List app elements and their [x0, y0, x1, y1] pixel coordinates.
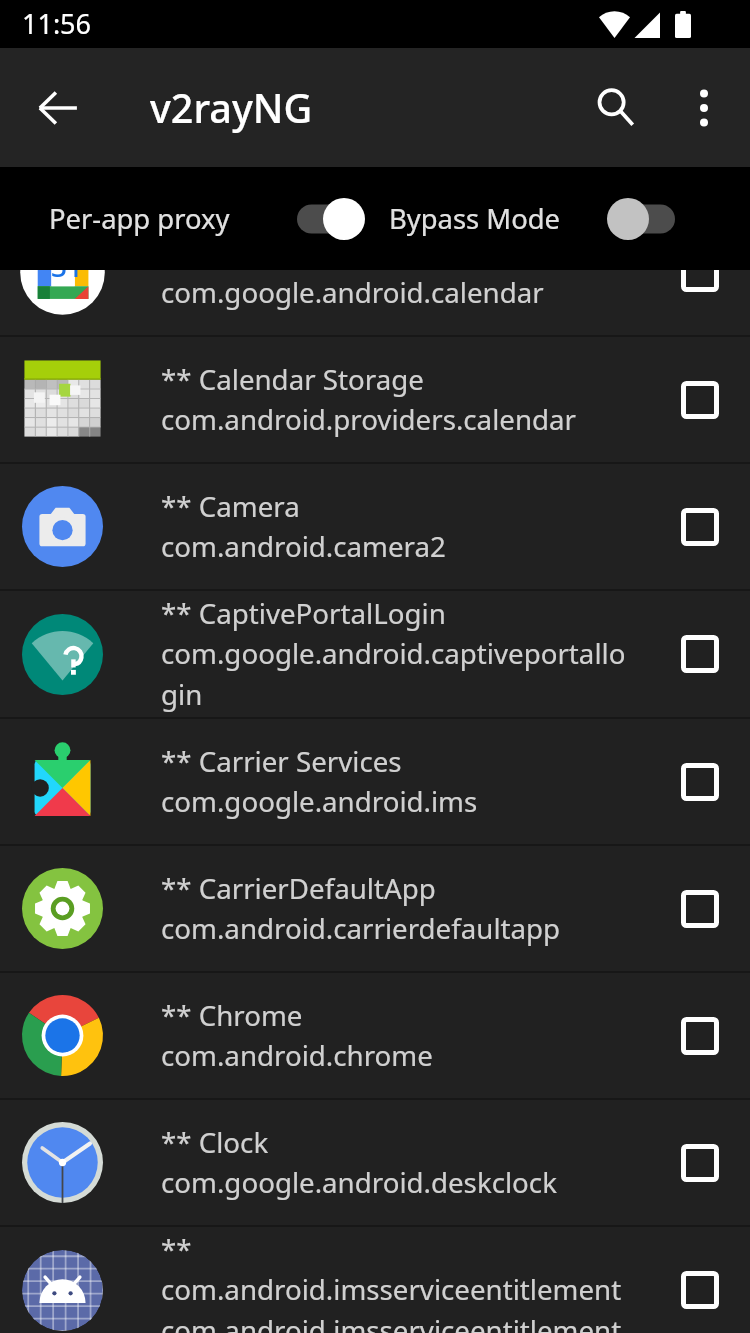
button[interactable]: Select ** CaptivePortalLogin — [660, 591, 740, 717]
button[interactable]: ** Clock com.google.android.deskclock — [0, 1100, 750, 1225]
staticText: v2rayNG — [150, 81, 313, 135]
staticText: 11:56 — [22, 5, 92, 42]
button[interactable]: Select ** CarrierDefaultApp — [660, 846, 740, 971]
button[interactable]: ** Camera com.android.camera2 — [0, 464, 750, 589]
staticText: ** CaptivePortalLogin com.google.android… — [161, 594, 626, 713]
button[interactable]: Select ** Carrier Services — [660, 719, 740, 844]
button[interactable]: ** Calendar Storage com.android.provider… — [0, 337, 750, 462]
button[interactable]: Select ** Calendar — [660, 270, 740, 335]
staticText: ** CarrierDefaultApp com.android.carrier… — [161, 869, 561, 947]
button[interactable]: Select ** Calendar Storage — [660, 337, 740, 462]
button[interactable]: Select ** Clock — [660, 1100, 740, 1225]
staticText: ** Calendar com.google.android.calendar — [161, 270, 544, 311]
staticText: Bypass Mode — [389, 200, 561, 237]
staticText: ** Camera com.android.camera2 — [161, 487, 446, 565]
button[interactable]: ** Carrier Services com.google.android.i… — [0, 719, 750, 844]
button[interactable]: Select ** Chrome — [660, 973, 740, 1098]
button[interactable]: Bypass Mode, off — [607, 197, 675, 241]
staticText: ** Calendar Storage com.android.provider… — [161, 360, 577, 438]
button[interactable]: ** CarrierDefaultApp com.android.carrier… — [0, 846, 750, 971]
button[interactable]: 31 — [0, 270, 750, 335]
button[interactable]: ** com.android.imsserviceentitlement com… — [0, 1227, 750, 1333]
button[interactable]: More options — [658, 48, 750, 167]
button[interactable]: Select ** Camera — [660, 464, 740, 589]
button[interactable]: Per-app proxy, on — [297, 197, 365, 241]
staticText: ** Clock com.google.android.deskclock — [161, 1123, 557, 1201]
staticText: ** Chrome com.android.chrome — [161, 996, 433, 1074]
staticText: 31 — [51, 270, 84, 285]
staticText: ** com.android.imsserviceentitlement com… — [161, 1230, 626, 1333]
button[interactable]: Search — [574, 48, 658, 167]
button[interactable]: ** Chrome com.android.chrome — [0, 973, 750, 1098]
button[interactable]: ** CaptivePortalLogin com.google.android… — [0, 591, 750, 717]
staticText: Per-app proxy — [49, 200, 230, 237]
button[interactable]: Select ** com.android.imsserviceentitlem… — [660, 1227, 740, 1333]
button[interactable]: Navigate up — [22, 72, 94, 144]
staticText: ** Carrier Services com.google.android.i… — [161, 742, 478, 820]
